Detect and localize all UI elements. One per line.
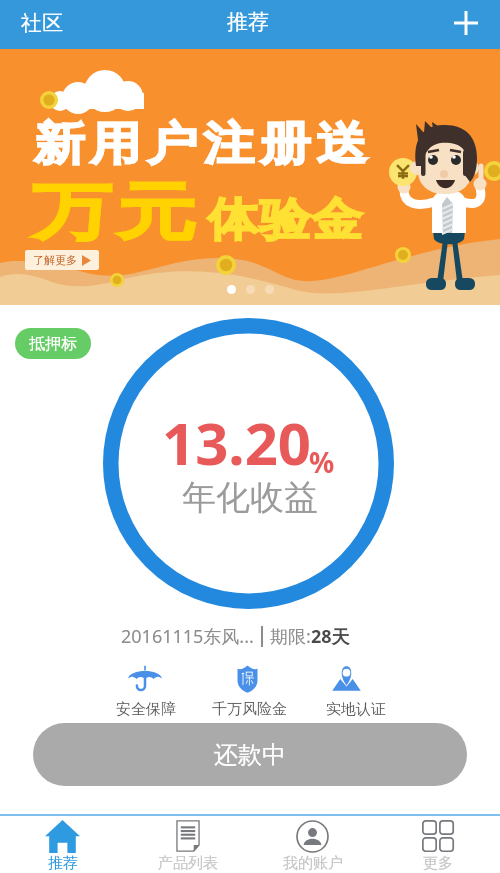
staticText: 我的账户 xyxy=(283,854,343,873)
staticText: 年化收益 xyxy=(182,476,318,519)
staticText: 13.20 xyxy=(162,403,312,482)
staticText: 安全保障 xyxy=(116,700,176,719)
button[interactable]: 推荐 xyxy=(0,816,125,873)
staticText: 了解更多 xyxy=(33,253,77,267)
staticText: 万元 xyxy=(30,174,199,251)
staticText: 抵押标 xyxy=(29,334,77,354)
staticText: 千万风险金 xyxy=(212,700,287,719)
staticText: 体验金 xyxy=(207,192,363,249)
button[interactable]: Add xyxy=(442,0,500,49)
staticText: 20161115东风... xyxy=(121,624,254,649)
staticText: 新用户注册送 xyxy=(31,116,370,173)
button[interactable]: 产品列表 xyxy=(125,816,250,873)
staticText: 社区 xyxy=(21,10,63,36)
staticText: % xyxy=(309,443,335,481)
staticText: 期限: xyxy=(270,624,311,649)
button[interactable] xyxy=(90,660,202,722)
staticText: 实地认证 xyxy=(326,700,386,719)
staticText: 还款中 xyxy=(214,740,286,770)
staticText: 更多 xyxy=(423,854,453,873)
staticText: 产品列表 xyxy=(158,854,218,873)
button[interactable] xyxy=(300,660,412,722)
staticText: 推荐 xyxy=(227,9,269,35)
button[interactable]: 社区 xyxy=(3,0,79,46)
button[interactable]: 了解更多 xyxy=(25,250,99,270)
staticText: 28天 xyxy=(311,624,350,649)
button[interactable] xyxy=(193,660,305,722)
button[interactable]: 抵押标 xyxy=(15,328,91,359)
button[interactable]: 更多 xyxy=(375,816,500,873)
staticText: 推荐 xyxy=(48,854,78,873)
button[interactable]: 还款中 xyxy=(33,723,467,786)
button[interactable]: 我的账户 xyxy=(250,816,375,873)
